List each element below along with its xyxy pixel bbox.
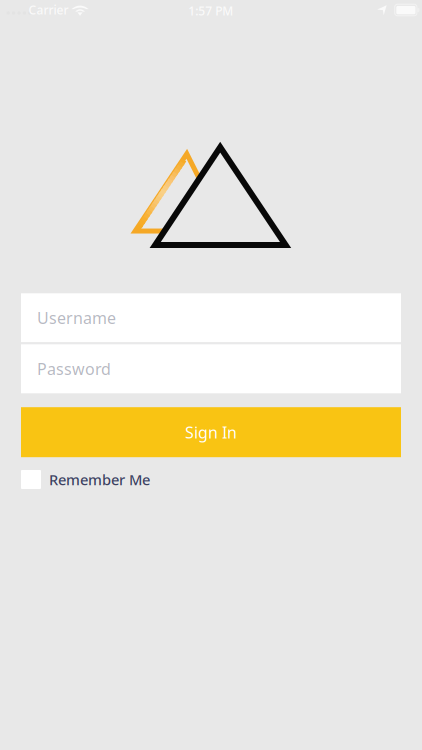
button[interactable]: Remember Me bbox=[21, 470, 221, 489]
staticText: Sign In bbox=[185, 422, 237, 443]
staticText: Password bbox=[37, 358, 111, 379]
button[interactable]: Password bbox=[21, 344, 401, 393]
staticText: Carrier bbox=[28, 2, 68, 18]
staticText: Username bbox=[37, 307, 116, 328]
staticText: 1:57 PM bbox=[188, 3, 233, 19]
button[interactable]: Username bbox=[21, 293, 401, 342]
button[interactable]: Sign In bbox=[21, 407, 401, 457]
staticText: Remember Me bbox=[49, 470, 150, 489]
